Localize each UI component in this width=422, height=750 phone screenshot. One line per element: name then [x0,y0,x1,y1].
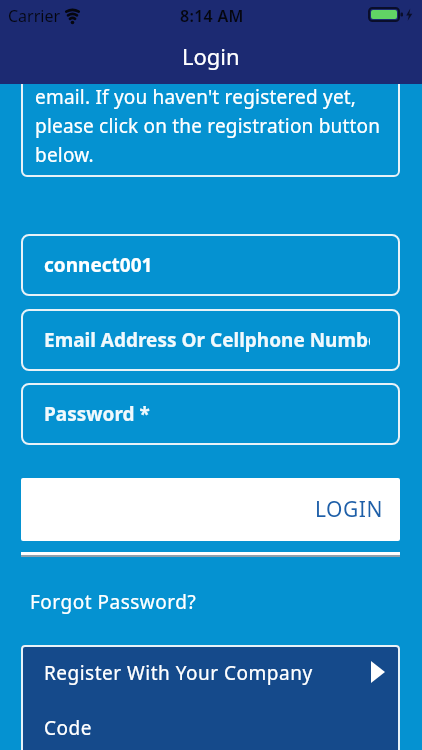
staticText: connect001 [44,252,370,278]
staticText: Email Address Or Cellphone Number [44,327,370,353]
button[interactable]: LOGIN [21,478,400,541]
button[interactable]: Forgot Password? [30,589,197,615]
staticText: LOGIN [315,495,383,524]
staticText: Login [182,41,240,71]
button[interactable]: Email Address Or Cellphone Number [21,309,400,371]
staticText: 8:14 AM [180,5,244,27]
staticText: Forgot Password? [30,589,197,615]
staticText: Register With Your Company [44,660,313,686]
staticText: Carrier [8,5,61,27]
button[interactable]: connect001 [21,234,400,296]
button[interactable]: Register With Your Company [21,645,400,750]
staticText: Code [44,715,92,741]
button[interactable]: Password * [21,383,400,445]
staticText: email. If you haven't registered yet, [35,84,357,110]
staticText: please click on the registration button [35,113,381,139]
staticText: below. [35,142,94,168]
staticText: Password * [44,401,370,427]
